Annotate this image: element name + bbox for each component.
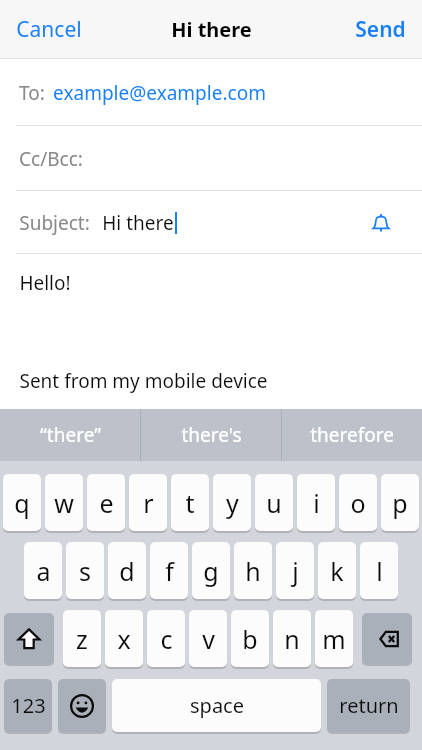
staticText: l: [376, 554, 383, 588]
button[interactable]: Send: [347, 9, 414, 50]
button[interactable]: y: [213, 474, 251, 531]
staticText: f: [165, 554, 174, 588]
button[interactable]: s: [66, 542, 104, 599]
staticText: e: [99, 486, 114, 520]
staticText: x: [117, 622, 131, 656]
button[interactable]: Subject:: [0, 191, 422, 254]
button[interactable]: “there”: [0, 409, 140, 461]
staticText: s: [79, 554, 91, 588]
staticText: Cc/Bcc:: [19, 146, 83, 172]
button[interactable]: space: [112, 679, 321, 732]
button[interactable]: Emoji: [58, 679, 106, 732]
button[interactable]: m: [315, 610, 353, 667]
button[interactable]: w: [45, 474, 83, 531]
staticText: Send: [355, 15, 406, 44]
staticText: n: [284, 622, 300, 656]
button[interactable]: v: [189, 610, 227, 667]
button[interactable]: i: [297, 474, 335, 531]
button[interactable]: l: [360, 542, 398, 599]
button[interactable]: u: [255, 474, 293, 531]
button[interactable]: p: [381, 474, 419, 531]
staticText: Cancel: [16, 15, 82, 44]
staticText: d: [119, 554, 135, 588]
staticText: b: [242, 622, 258, 656]
button[interactable]: t: [171, 474, 209, 531]
button[interactable]: therefore: [282, 409, 422, 461]
staticText: p: [392, 486, 408, 520]
button[interactable]: q: [3, 474, 41, 531]
button[interactable]: c: [147, 610, 185, 667]
staticText: space: [190, 692, 244, 719]
button[interactable]: Notify me: [364, 206, 398, 240]
button[interactable]: n: [273, 610, 311, 667]
staticText: u: [266, 486, 282, 520]
staticText: Hello!: [19, 270, 71, 296]
staticText: m: [322, 622, 346, 656]
staticText: Hi there: [171, 16, 252, 43]
button[interactable]: g: [192, 542, 230, 599]
button[interactable]: x: [105, 610, 143, 667]
staticText: q: [14, 486, 30, 520]
staticText: v: [202, 622, 215, 656]
button[interactable]: z: [63, 610, 101, 667]
staticText: r: [143, 486, 154, 520]
button[interactable]: f: [150, 542, 188, 599]
staticText: To:: [19, 80, 45, 106]
staticText: 123: [11, 692, 46, 719]
staticText: example@example.com: [53, 80, 266, 106]
staticText: Subject:: [19, 210, 90, 236]
button[interactable]: j: [276, 542, 314, 599]
button[interactable]: Backspace: [362, 613, 412, 664]
button[interactable]: Cc/Bcc:: [0, 126, 422, 191]
button[interactable]: 123: [4, 679, 52, 732]
staticText: w: [54, 486, 74, 520]
staticText: o: [350, 486, 366, 520]
staticText: h: [245, 554, 261, 588]
staticText: Sent from my mobile device: [19, 368, 268, 394]
button[interactable]: h: [234, 542, 272, 599]
button[interactable]: d: [108, 542, 146, 599]
staticText: return: [339, 692, 399, 719]
staticText: i: [313, 486, 320, 520]
button[interactable]: e: [87, 474, 125, 531]
staticText: c: [160, 622, 173, 656]
button[interactable]: r: [129, 474, 167, 531]
staticText: therefore: [310, 422, 394, 448]
button[interactable]: b: [231, 610, 269, 667]
button[interactable]: Cancel: [8, 9, 90, 50]
staticText: z: [76, 622, 88, 656]
staticText: there's: [181, 422, 242, 448]
staticText: a: [36, 554, 51, 588]
staticText: j: [292, 554, 299, 588]
staticText: Hi there: [102, 210, 174, 236]
staticText: k: [330, 554, 344, 588]
staticText: t: [185, 486, 195, 520]
button[interactable]: Hello!: [0, 254, 422, 409]
staticText: “there”: [40, 422, 101, 448]
button[interactable]: o: [339, 474, 377, 531]
button[interactable]: a: [24, 542, 62, 599]
staticText: y: [226, 486, 239, 520]
button[interactable]: k: [318, 542, 356, 599]
button[interactable]: return: [327, 679, 410, 732]
button[interactable]: To:: [0, 59, 422, 126]
button[interactable]: Shift: [4, 613, 54, 664]
button[interactable]: there's: [141, 409, 281, 461]
staticText: g: [203, 554, 219, 588]
